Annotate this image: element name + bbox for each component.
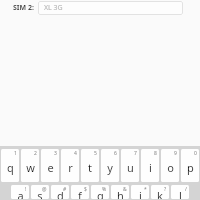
staticText: $ [84, 186, 87, 193]
staticText: * [144, 186, 147, 193]
button[interactable]: 8 [141, 149, 159, 182]
button[interactable]: ! [11, 185, 29, 199]
button[interactable]: 1 [1, 149, 19, 182]
staticText: / [185, 186, 187, 193]
staticText: u [127, 160, 134, 175]
staticText: SIM 2: [13, 3, 34, 13]
button[interactable]: # [51, 185, 69, 199]
staticText: a [17, 188, 24, 199]
button[interactable]: ? [151, 185, 169, 199]
button[interactable]: 0 [181, 149, 199, 182]
staticText: s [37, 188, 43, 199]
staticText: 0 [194, 150, 197, 157]
button[interactable]: 6 [101, 149, 119, 182]
staticText: h [117, 188, 124, 199]
button[interactable]: XL 3G [38, 1, 183, 15]
staticText: i [149, 160, 152, 175]
staticText: g [97, 188, 104, 199]
staticText: ! [25, 186, 27, 193]
staticText: 5 [94, 150, 97, 157]
button[interactable]: 5 [81, 149, 99, 182]
staticText: 1 [14, 150, 17, 157]
staticText: 4 [74, 150, 77, 157]
staticText: j [139, 188, 142, 199]
button[interactable]: $ [71, 185, 89, 199]
button[interactable]: 7 [121, 149, 139, 182]
staticText: l [179, 188, 182, 199]
staticText: 2 [34, 150, 37, 157]
staticText: 8 [154, 150, 157, 157]
button[interactable]: @ [31, 185, 49, 199]
staticText: # [63, 186, 67, 193]
staticText: @ [42, 186, 47, 193]
staticText: f [78, 188, 82, 199]
staticText: 7 [134, 150, 137, 157]
button[interactable]: * [131, 185, 149, 199]
staticText: 6 [114, 150, 117, 157]
staticText: 3 [54, 150, 57, 157]
staticText: q [7, 160, 14, 175]
staticText: t [88, 160, 92, 175]
staticText: k [157, 188, 163, 199]
staticText: e [47, 160, 54, 175]
staticText: p [187, 160, 194, 175]
staticText: w [26, 160, 35, 175]
staticText: XL 3G [44, 3, 63, 13]
staticText: ? [164, 186, 167, 193]
staticText: & [123, 186, 127, 193]
staticText: o [167, 160, 174, 175]
staticText: 9 [174, 150, 177, 157]
button[interactable]: 4 [61, 149, 79, 182]
button[interactable]: % [91, 185, 109, 199]
button[interactable]: / [171, 185, 189, 199]
staticText: r [68, 160, 73, 175]
staticText: d [57, 188, 64, 199]
staticText: % [102, 186, 107, 193]
button[interactable]: & [111, 185, 129, 199]
staticText: y [107, 160, 113, 175]
button[interactable]: 9 [161, 149, 179, 182]
button[interactable]: 3 [41, 149, 59, 182]
button[interactable]: 2 [21, 149, 39, 182]
